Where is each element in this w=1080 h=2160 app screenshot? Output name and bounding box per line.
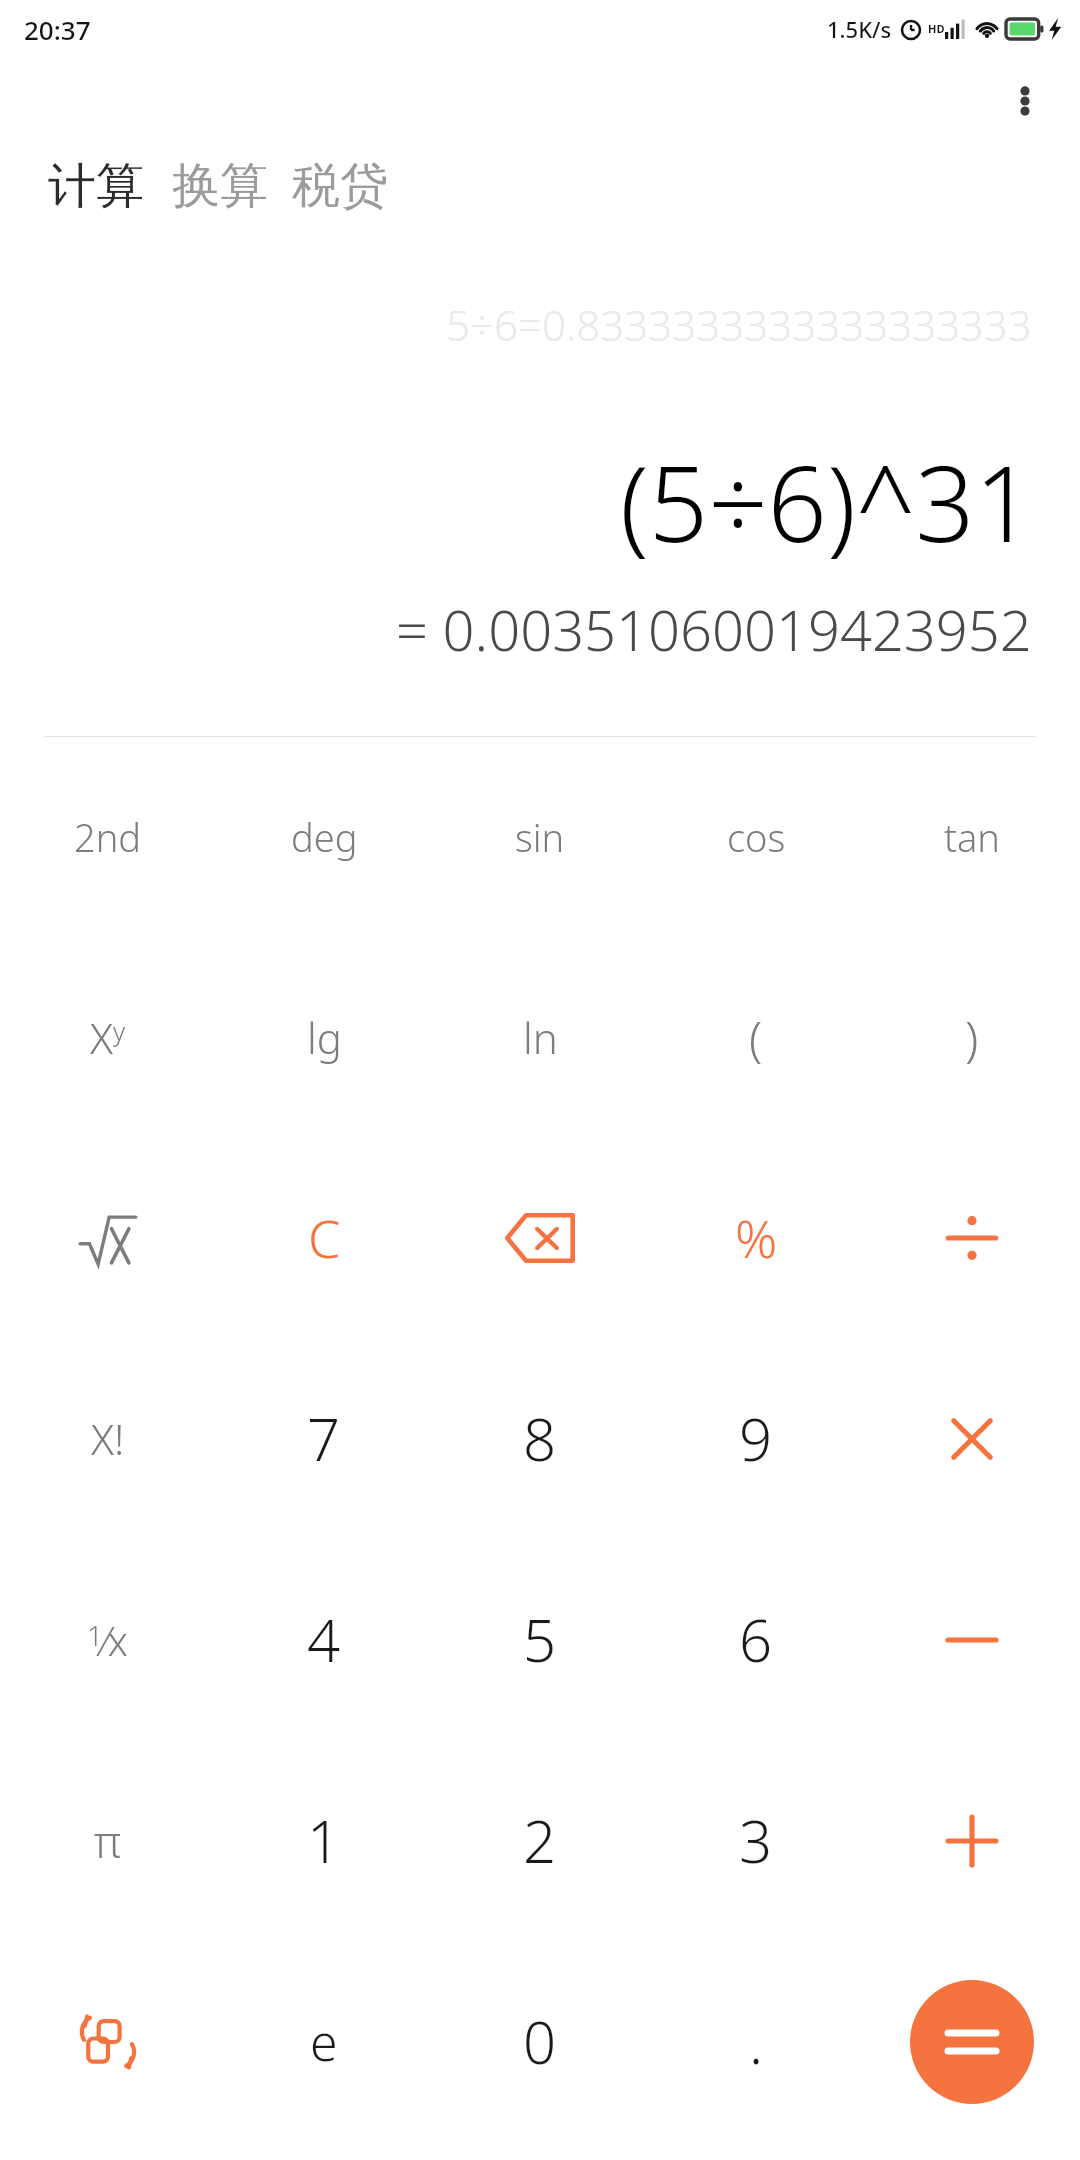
button[interactable]: tan: [864, 737, 1080, 937]
button[interactable]: Xy: [0, 937, 216, 1137]
button[interactable]: 9: [648, 1338, 864, 1539]
button[interactable]: %: [648, 1137, 864, 1338]
staticText: π: [94, 1811, 122, 1871]
button[interactable]: Unit convert: [0, 1941, 216, 2142]
button[interactable]: X!: [0, 1338, 216, 1539]
staticText: e: [310, 2008, 338, 2076]
staticText: HD: [928, 21, 945, 36]
staticText: 5÷6=0.8333333333333333333: [446, 296, 1032, 353]
button[interactable]: 换算: [160, 156, 280, 216]
staticText: 8: [523, 1399, 557, 1478]
button[interactable]: lg: [216, 937, 432, 1137]
staticText: (: [749, 1005, 763, 1070]
staticText: .: [749, 2002, 764, 2081]
button[interactable]: Equals: [910, 1980, 1034, 2104]
button[interactable]: 2nd: [0, 737, 216, 937]
button[interactable]: e: [216, 1941, 432, 2142]
button[interactable]: 7: [216, 1338, 432, 1539]
button[interactable]: More options: [992, 68, 1058, 134]
staticText: cos: [727, 811, 786, 863]
staticText: 2: [523, 1801, 557, 1880]
button[interactable]: π: [0, 1740, 216, 1941]
staticText: 计算: [48, 156, 144, 216]
staticText: 7: [307, 1399, 341, 1478]
staticText: ): [965, 1005, 979, 1070]
button[interactable]: ): [864, 937, 1080, 1137]
staticText: 税贷: [292, 156, 388, 216]
button[interactable]: 2: [432, 1740, 648, 1941]
staticText: 3: [739, 1801, 773, 1880]
button[interactable]: 4: [216, 1539, 432, 1740]
button[interactable]: 税贷: [280, 156, 400, 216]
button[interactable]: Plus: [864, 1740, 1080, 1941]
button[interactable]: Square root: [0, 1137, 216, 1338]
button[interactable]: .: [648, 1941, 864, 2142]
staticText: %: [735, 1202, 778, 1273]
staticText: 换算: [172, 156, 268, 216]
staticText: C: [308, 1202, 341, 1273]
button[interactable]: cos: [648, 737, 864, 937]
button[interactable]: Minus: [864, 1539, 1080, 1740]
staticText: lg: [307, 1009, 342, 1066]
staticText: Xy: [90, 1009, 126, 1066]
staticText: sin: [515, 811, 565, 863]
button[interactable]: 3: [648, 1740, 864, 1941]
staticText: = 0.00351060019423952: [396, 591, 1032, 667]
staticText: 0: [523, 2002, 557, 2081]
staticText: X!: [91, 1410, 125, 1467]
staticText: (5÷6)^31: [620, 431, 1034, 573]
button[interactable]: Multiply: [864, 1338, 1080, 1539]
button[interactable]: Clear: [216, 1137, 432, 1338]
button[interactable]: 8: [432, 1338, 648, 1539]
button[interactable]: 5: [432, 1539, 648, 1740]
button[interactable]: Backspace: [432, 1137, 648, 1338]
staticText: ln: [523, 1009, 558, 1066]
staticText: 1: [307, 1801, 341, 1880]
staticText: 20:37: [24, 12, 91, 47]
button[interactable]: ln: [432, 937, 648, 1137]
button[interactable]: (: [648, 937, 864, 1137]
staticText: 9: [739, 1399, 773, 1478]
button[interactable]: sin: [432, 737, 648, 937]
staticText: 2nd: [74, 811, 142, 863]
staticText: 5: [523, 1600, 557, 1679]
button[interactable]: 6: [648, 1539, 864, 1740]
staticText: 1⁄x: [87, 1613, 129, 1667]
button[interactable]: 计算: [48, 156, 160, 216]
staticText: tan: [944, 811, 1000, 863]
button[interactable]: Divide: [864, 1137, 1080, 1338]
staticText: deg: [291, 811, 358, 863]
button[interactable]: deg: [216, 737, 432, 937]
staticText: 4: [307, 1600, 341, 1679]
button[interactable]: 1: [216, 1740, 432, 1941]
button[interactable]: 0: [432, 1941, 648, 2142]
staticText: 6: [739, 1600, 773, 1679]
staticText: 1.5K/s: [827, 14, 892, 44]
button[interactable]: 1⁄x: [0, 1539, 216, 1740]
